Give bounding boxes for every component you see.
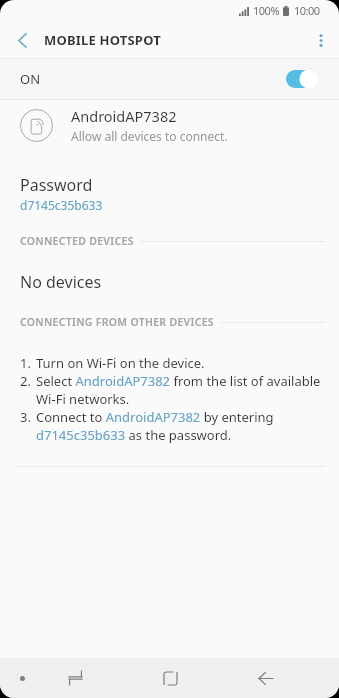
staticText: CONNECTING FROM OTHER DEVICES — [20, 315, 214, 329]
staticText: 2. — [20, 372, 31, 390]
button[interactable]: Back — [245, 658, 287, 698]
button[interactable]: Navigate up — [0, 22, 42, 58]
button[interactable]: Keyboard — [8, 664, 36, 692]
staticText: 10:00 — [294, 3, 320, 18]
button[interactable]: AndroidAP7382 — [0, 100, 339, 150]
staticText: MOBILE HOTSPOT — [44, 31, 161, 49]
button[interactable]: Home — [149, 658, 191, 698]
staticText: 3. — [20, 408, 31, 426]
staticText: ON — [20, 70, 41, 88]
button[interactable]: No devices — [0, 268, 339, 296]
staticText: AndroidAP7382 — [71, 106, 177, 126]
staticText: Allow all devices to connect. — [71, 128, 228, 144]
staticText: CONNECTED DEVICES — [20, 234, 134, 248]
staticText: Turn on Wi-Fi on the device. — [36, 354, 205, 372]
staticText: Select AndroidAP7382 from the list of av… — [36, 372, 325, 408]
staticText: Password — [20, 174, 93, 196]
staticText: Connect to AndroidAP7382 by entering d71… — [36, 408, 325, 444]
button[interactable]: Recent apps — [54, 658, 96, 698]
staticText: d7145c35b633 — [20, 197, 103, 213]
staticText: 100% — [253, 3, 280, 18]
button[interactable]: More options — [299, 22, 339, 58]
button[interactable]: Password — [0, 168, 339, 216]
staticText: No devices — [20, 271, 102, 293]
button[interactable]: ON — [0, 59, 339, 99]
staticText: 1. — [20, 354, 31, 372]
